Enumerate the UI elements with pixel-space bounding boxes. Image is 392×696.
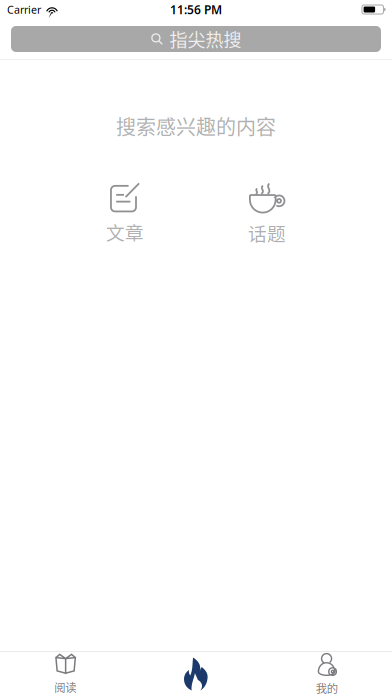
staticText: Carrier [7, 2, 41, 17]
staticText: 阅读 [54, 679, 76, 695]
staticText: 搜索感兴趣的内容 [116, 111, 276, 140]
button[interactable]: 热搜 [131, 652, 261, 696]
staticText: 话题 [248, 219, 286, 246]
staticText: 指尖热搜 [169, 26, 241, 52]
button[interactable]: 文章 [83, 182, 167, 244]
button[interactable]: 阅读 [0, 652, 131, 696]
button[interactable]: 我的 [261, 652, 392, 696]
button[interactable]: 指尖热搜 [11, 26, 381, 52]
staticText: 文章 [106, 218, 144, 245]
button[interactable]: 话题 [225, 182, 309, 244]
staticText: 11:56 PM [170, 1, 222, 17]
staticText: 我的 [316, 680, 338, 696]
